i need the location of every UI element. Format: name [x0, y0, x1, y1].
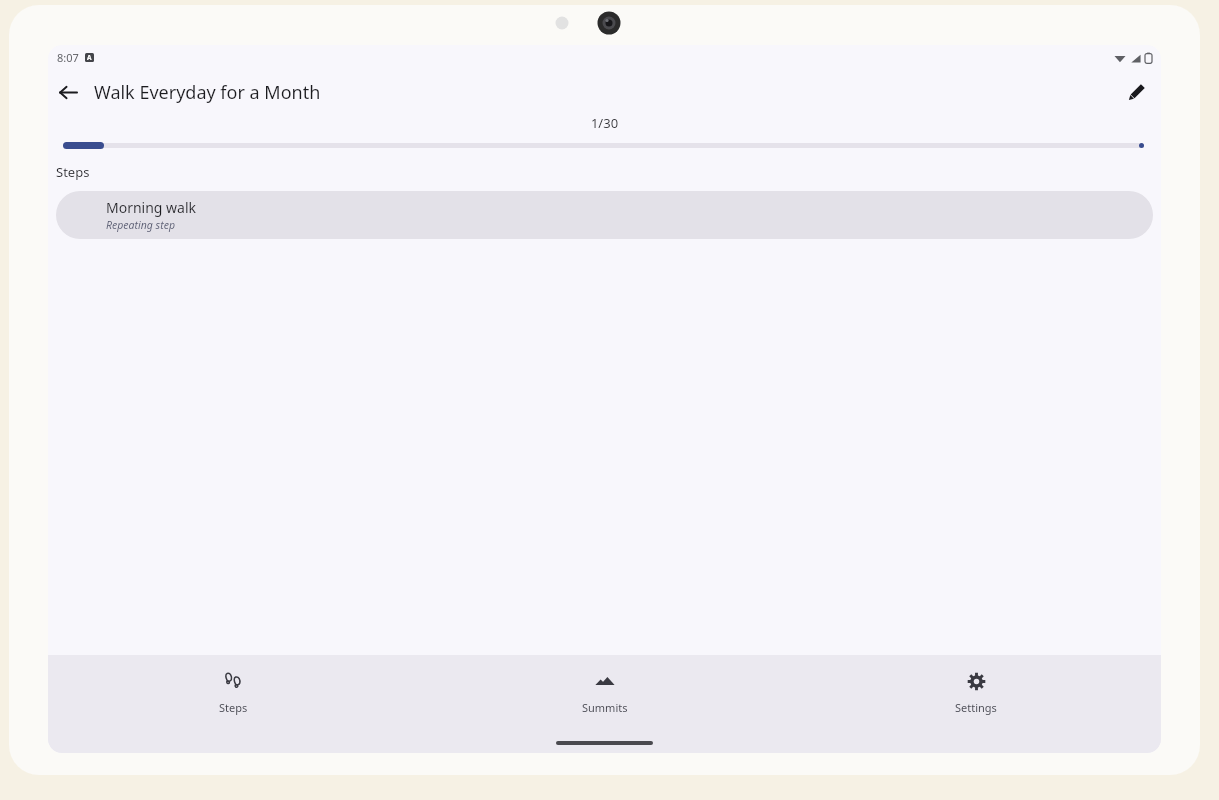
- button[interactable]: Edit: [1117, 72, 1157, 112]
- button[interactable]: Settings: [790, 663, 1161, 721]
- staticText: Morning walk: [106, 198, 197, 217]
- staticText: Steps: [219, 700, 248, 715]
- staticText: A: [87, 53, 92, 62]
- button[interactable]: Morning walk: [56, 191, 1153, 239]
- button[interactable]: Summits: [419, 663, 790, 721]
- staticText: Steps: [56, 163, 90, 181]
- staticText: Repeating step: [106, 218, 175, 232]
- staticText: Settings: [955, 700, 997, 715]
- staticText: Summits: [582, 700, 628, 715]
- staticText: 8:07: [57, 50, 79, 65]
- button[interactable]: Steps: [48, 663, 419, 721]
- button[interactable]: Back: [48, 72, 88, 112]
- staticText: 1/30: [48, 114, 1161, 132]
- staticText: Walk Everyday for a Month: [94, 80, 321, 105]
